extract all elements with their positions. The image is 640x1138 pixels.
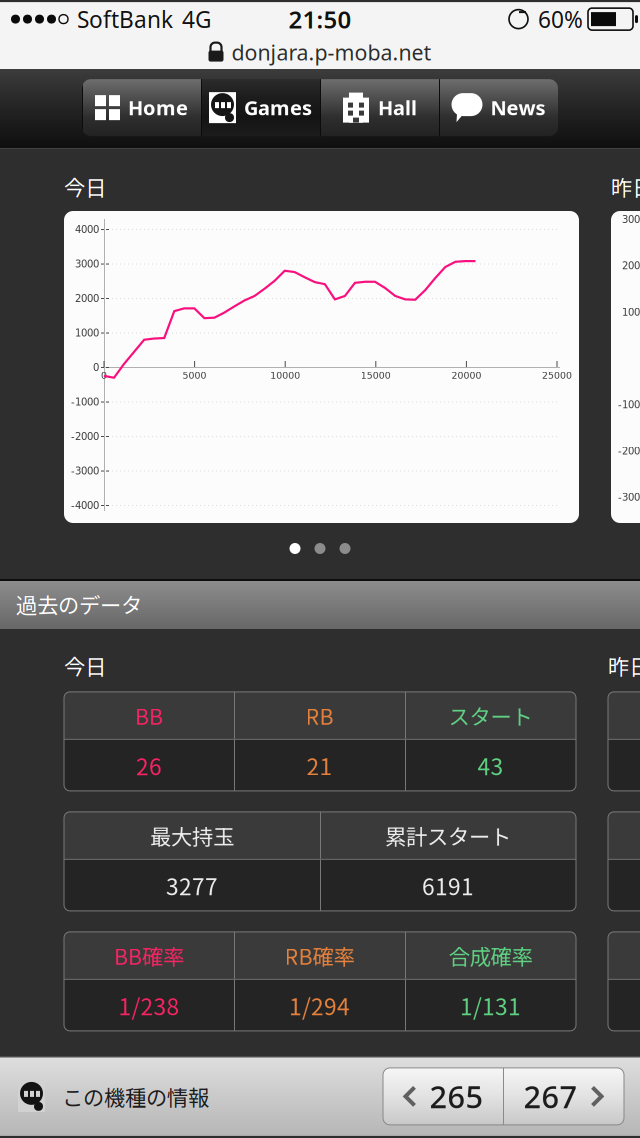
staticText: 4000 [75,224,99,235]
staticText: -2000 [71,431,99,442]
staticText: 43 [477,749,503,782]
staticText: 20000 [451,370,481,381]
staticText: Hall [378,94,417,121]
staticText: Home [128,94,188,121]
button[interactable]: Games [201,79,320,136]
staticText: 0 [101,370,107,381]
button[interactable]: Hall [320,79,439,136]
staticText: 25000 [542,370,572,381]
staticText: 過去のデータ [16,589,142,619]
staticText: -1000 [71,396,99,408]
staticText: -3000 [618,492,640,503]
button[interactable]: News [439,79,558,136]
staticText: 1000 [622,306,640,318]
staticText: 2000 [75,293,99,304]
staticText: 60% [538,4,583,34]
button[interactable]: 267 [504,1068,624,1125]
staticText: RB確率 [284,940,354,971]
staticText: 6191 [422,869,474,902]
staticText: 昨日 [608,650,640,681]
staticText: BB確率 [114,940,184,971]
staticText: この機種の情報 [62,1081,209,1112]
button[interactable]: Home [82,79,201,136]
staticText: 4G [182,4,212,34]
staticText: SoftBank [77,4,173,34]
staticText: BB [135,700,163,731]
staticText: 26 [136,749,162,782]
staticText: 3000 [622,214,640,225]
staticText: -4000 [71,500,99,511]
staticText: donjara.p-moba.net [231,38,431,66]
staticText: -2000 [618,445,640,457]
staticText: 5000 [183,370,207,381]
button[interactable]: この機種の情報 [0,1067,209,1126]
staticText: 今日 [64,171,106,202]
staticText: 最大持玉 [150,820,234,851]
staticText: 1/238 [118,989,179,1022]
staticText: 今日 [64,650,106,681]
staticText: -1000 [618,399,640,411]
staticText: 267 [523,1076,577,1117]
button[interactable]: 265 [383,1068,503,1125]
staticText: RB [305,700,333,731]
staticText: 昨日 [611,171,640,202]
staticText: 15000 [361,370,391,381]
staticText: スタート [448,700,532,731]
staticText: 3277 [166,869,218,902]
staticText: 1/131 [460,989,521,1022]
staticText: Games [244,94,312,121]
staticText: -3000 [71,465,99,477]
staticText: 累計スタート [385,820,511,851]
staticText: 10000 [270,370,300,381]
staticText: News [490,94,545,121]
staticText: 1000 [75,327,99,339]
staticText: 3000 [75,258,99,270]
staticText: 21 [306,749,332,782]
staticText: 0 [93,362,99,373]
staticText: 21:50 [288,3,351,35]
staticText: 265 [429,1076,483,1117]
staticText: 合成確率 [448,940,532,971]
staticText: 1/294 [289,989,350,1022]
staticText: 2000 [622,260,640,272]
